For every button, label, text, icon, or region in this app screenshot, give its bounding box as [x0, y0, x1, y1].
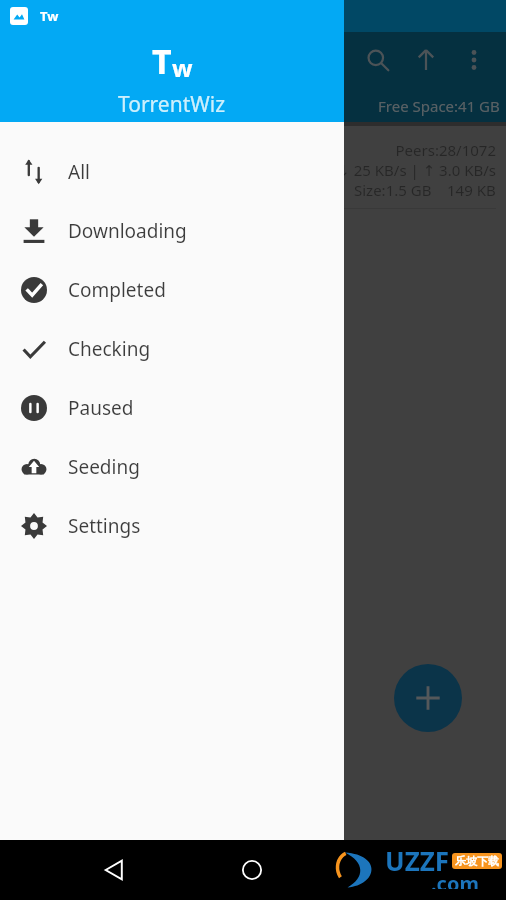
staticText: Downloading: [68, 218, 187, 244]
button[interactable]: Settings: [0, 496, 344, 555]
staticText: T: [152, 38, 172, 84]
button[interactable]: More options: [450, 36, 498, 84]
staticText: .com: [431, 870, 479, 889]
button[interactable]: Search: [354, 36, 402, 84]
staticText: w: [172, 51, 193, 84]
staticText: ↓ 25 KB/s | ↑ 3.0 KB/s: [10, 160, 496, 180]
staticText: Settings: [68, 513, 141, 539]
button[interactable]: Add torrent: [394, 664, 462, 732]
staticText: Completed: [68, 277, 166, 303]
button[interactable]: Downloading: [0, 201, 344, 260]
button[interactable]: Completed: [0, 260, 344, 319]
staticText: Checking: [68, 336, 151, 362]
button[interactable]: Back: [90, 846, 138, 894]
button[interactable]: Seeding: [0, 437, 344, 496]
button[interactable]: Home: [228, 846, 276, 894]
staticText: 乐坡下载: [455, 854, 499, 868]
button[interactable]: Paused: [0, 378, 344, 437]
staticText: Tw: [40, 7, 59, 25]
staticText: TorrentWiz: [118, 90, 226, 119]
staticText: Size:1.5 GB 149 KB: [354, 180, 496, 200]
staticText: Peers:28/1072: [10, 140, 496, 160]
button[interactable]: All: [0, 142, 344, 201]
button[interactable]: Sort ascending: [402, 36, 450, 84]
staticText: All: [68, 159, 90, 185]
staticText: Seeding: [68, 454, 140, 480]
staticText: UZZF: [385, 843, 450, 878]
staticText: Paused: [68, 395, 134, 421]
button[interactable]: Checking: [0, 319, 344, 378]
staticText: Free Space:41 GB: [378, 96, 500, 116]
